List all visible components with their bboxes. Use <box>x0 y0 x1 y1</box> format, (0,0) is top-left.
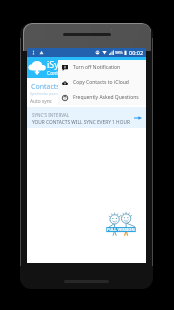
staticText: 98% <box>115 50 123 55</box>
button[interactable]: SYNC'S INTERVAL <box>27 107 146 128</box>
button[interactable]: Copy Contacts to iCloud <box>58 75 146 90</box>
staticText: Copy Contacts to iCloud <box>73 79 129 86</box>
staticText: Contacts <box>31 82 60 92</box>
staticText: SYNC'S INTERVAL <box>32 112 70 118</box>
staticText: Auto sync <box>30 98 52 105</box>
button[interactable]: Frequently Asked Questions <box>58 90 146 105</box>
button[interactable]: Full version <box>105 210 137 236</box>
staticText: YOUR CONTACTS WILL SYNC EVERY 1 HOUR <box>32 119 130 126</box>
staticText: Turn off Notification <box>73 64 121 71</box>
button[interactable]: Turn off Notification <box>58 60 146 75</box>
button[interactable]: Contacts <box>27 82 60 92</box>
staticText: Synchronize your contacts <box>30 92 70 96</box>
staticText: 00:02 <box>129 49 144 56</box>
staticText: Frequently Asked Questions <box>73 94 139 101</box>
staticText: FULL VERSION <box>107 227 135 232</box>
staticText: Contacts <box>47 70 68 77</box>
staticText: iSync <box>47 58 69 70</box>
